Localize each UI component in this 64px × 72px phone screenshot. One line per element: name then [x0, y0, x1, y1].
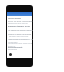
staticText: Dolor sit amet consectetur [8, 20, 33, 23]
staticText: voluptate [8, 48, 17, 51]
staticText: consequat duis aute irure dolor in [8, 42, 33, 48]
staticText: Aliqua ut enim ad minim [8, 33, 32, 36]
staticText: Lorem ipsum [8, 17, 22, 20]
staticText: Reprehenderit [8, 46, 23, 49]
button[interactable]: Add [9, 53, 12, 56]
button[interactable] [7, 12, 32, 16]
staticText: veniam quis nostrud exercitation ullamco [9, 35, 33, 41]
staticText: laboris nisi ut aliquip ex ea commodo [8, 38, 33, 44]
staticText: adipiscing elit sed do [8, 22, 28, 25]
staticText: Eiusmod tempor incid [8, 25, 30, 28]
staticText: Ut labore et dolore magna [8, 29, 33, 32]
